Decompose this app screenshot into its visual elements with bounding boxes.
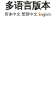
staticText: 简体中文 繁體中文 English (4, 11, 50, 17)
staticText: 多语言版本 (5, 0, 50, 11)
